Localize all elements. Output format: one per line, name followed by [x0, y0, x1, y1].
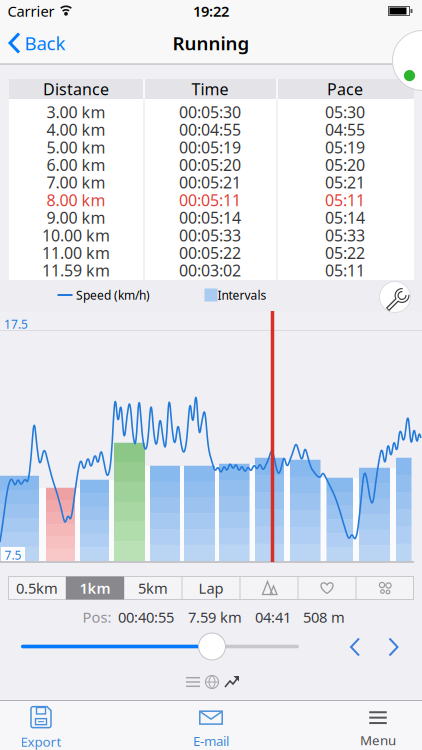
button[interactable]: 5km: [125, 576, 181, 600]
button[interactable]: Export: [1, 704, 81, 750]
staticText: Carrier: [7, 1, 54, 21]
button[interactable]: [299, 576, 355, 600]
button[interactable]: 1km: [67, 576, 123, 600]
staticText: 5.00 km: [46, 137, 105, 158]
staticText: 8.00 km: [46, 189, 105, 211]
staticText: 05:11: [325, 260, 365, 281]
staticText: 00:05:20: [179, 154, 241, 175]
staticText: 05:19: [325, 137, 365, 158]
staticText: 00:40:55: [118, 607, 174, 627]
button[interactable]: [198, 632, 226, 660]
button[interactable]: E-mail: [171, 706, 251, 750]
staticText: 00:03:02: [179, 260, 241, 281]
staticText: 00:05:33: [179, 225, 241, 246]
staticText: 3.00 km: [46, 101, 105, 123]
button[interactable]: Menu: [338, 706, 418, 750]
staticText: 9.00 km: [46, 207, 105, 228]
staticText: 17.5: [4, 316, 28, 332]
staticText: 00:04:55: [179, 119, 241, 140]
staticText: 4.00 km: [46, 119, 105, 140]
staticText: 6.00 km: [46, 154, 105, 175]
button[interactable]: Lap: [183, 576, 239, 600]
button[interactable]: [224, 675, 239, 687]
button[interactable]: [241, 576, 297, 600]
staticText: 5km: [138, 578, 168, 598]
staticText: Export: [20, 733, 61, 750]
staticText: 10.00 km: [42, 225, 110, 246]
button[interactable]: [357, 576, 413, 600]
staticText: 7.59 km: [188, 607, 242, 627]
staticText: 04:41: [255, 607, 291, 627]
staticText: 00:05:22: [179, 242, 241, 263]
staticText: Speed (km/h): [76, 287, 150, 303]
staticText: 508 m: [303, 607, 345, 627]
staticText: Back: [24, 31, 65, 55]
staticText: 05:30: [325, 101, 365, 123]
staticText: 11.00 km: [42, 242, 110, 263]
staticText: 1km: [79, 578, 110, 598]
staticText: 05:21: [325, 172, 365, 193]
button[interactable]: [204, 674, 220, 690]
staticText: 00:05:30: [179, 101, 241, 123]
staticText: 00:05:21: [179, 172, 241, 193]
staticText: 05:33: [325, 225, 365, 246]
staticText: Distance: [43, 78, 109, 100]
staticText: Lap: [198, 578, 223, 598]
staticText: Pace: [327, 78, 363, 100]
button[interactable]: [350, 637, 361, 656]
staticText: 7.00 km: [46, 172, 105, 193]
staticText: 00:05:11: [179, 189, 241, 211]
staticText: 05:11: [325, 189, 365, 211]
button[interactable]: [388, 637, 399, 656]
button[interactable]: [185, 676, 201, 688]
staticText: Time: [191, 78, 228, 100]
staticText: 05:20: [325, 154, 365, 175]
staticText: Menu: [360, 731, 396, 749]
staticText: Intervals: [217, 287, 266, 303]
staticText: 05:22: [325, 242, 365, 263]
staticText: 00:05:14: [179, 207, 241, 228]
staticText: 04:55: [325, 119, 365, 140]
staticText: Pos:: [82, 607, 111, 627]
staticText: 11.59 km: [42, 260, 110, 281]
button[interactable]: [379, 281, 411, 313]
button[interactable]: 0.5km: [9, 576, 65, 600]
staticText: 7.5: [4, 547, 21, 563]
staticText: 00:05:19: [179, 137, 241, 158]
staticText: 05:14: [325, 207, 365, 228]
staticText: 0.5km: [16, 578, 58, 598]
staticText: Running: [172, 31, 249, 55]
staticText: E-mail: [193, 732, 229, 750]
button[interactable]: Back: [8, 31, 65, 55]
staticText: 19:22: [193, 1, 229, 21]
